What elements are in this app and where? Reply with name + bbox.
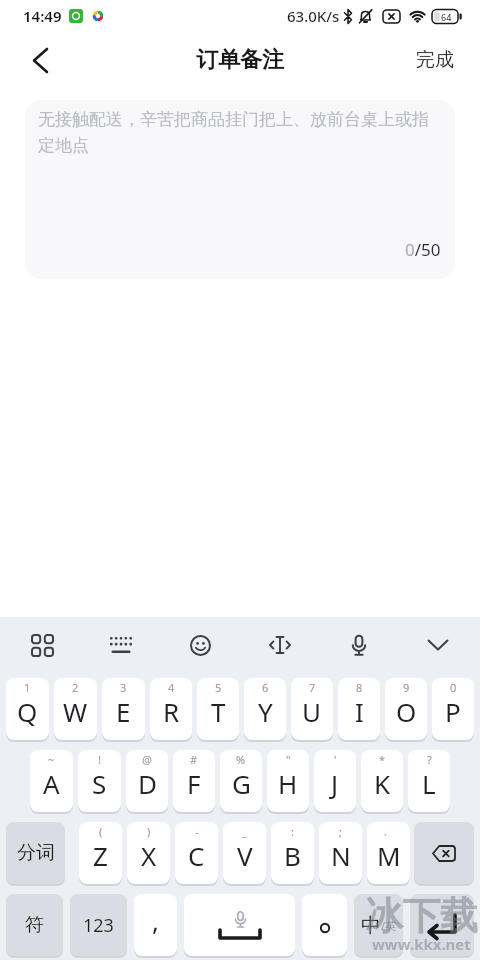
staticText: % — [236, 752, 246, 767]
staticText: " — [286, 752, 291, 767]
staticText: J — [331, 766, 339, 801]
staticText: 完成 — [416, 48, 454, 72]
button[interactable]: # — [173, 750, 215, 812]
staticText: 123 — [83, 913, 114, 938]
staticText: - — [195, 824, 199, 839]
staticText: M — [377, 838, 401, 873]
button[interactable]: - — [175, 822, 218, 884]
staticText: /英 — [381, 918, 397, 933]
button[interactable]: ) — [127, 822, 170, 884]
staticText: 6 — [262, 680, 269, 695]
button[interactable] — [414, 822, 474, 884]
staticText: ! — [98, 752, 101, 767]
staticText: ; — [339, 824, 342, 839]
button[interactable]: ~ — [30, 750, 73, 812]
staticText: Y — [258, 694, 273, 729]
button[interactable]: 符 — [6, 894, 63, 956]
button[interactable] — [302, 894, 347, 956]
button[interactable]: _ — [223, 822, 266, 884]
staticText: P — [445, 694, 461, 729]
staticText: F — [187, 766, 201, 801]
staticText: : — [291, 824, 294, 839]
staticText: 7 — [309, 680, 316, 695]
staticText: 订单备注 — [196, 46, 284, 74]
staticText: @ — [142, 752, 152, 767]
staticText: ) — [147, 824, 151, 839]
button[interactable] — [258, 623, 302, 667]
button[interactable]: 3 — [102, 678, 145, 740]
button[interactable]: 9 — [385, 678, 427, 740]
staticText: _ — [242, 824, 247, 839]
staticText: A — [43, 766, 60, 801]
button[interactable]: 0 — [432, 678, 474, 740]
button[interactable]: 中 — [354, 894, 403, 956]
button[interactable]: : — [271, 822, 314, 884]
button[interactable] — [99, 623, 143, 667]
button[interactable]: , — [134, 894, 177, 956]
staticText: Z — [93, 838, 108, 873]
staticText: N — [331, 838, 351, 873]
staticText: B — [284, 838, 301, 873]
button[interactable]: 完成 — [416, 48, 454, 72]
staticText: E — [116, 694, 131, 729]
staticText: H — [278, 766, 298, 801]
staticText: 3 — [120, 680, 127, 695]
staticText: 1 — [24, 680, 31, 695]
button[interactable]: * — [361, 750, 403, 812]
button[interactable]: ? — [408, 750, 450, 812]
staticText: 分词 — [17, 841, 55, 865]
button[interactable]: 2 — [54, 678, 97, 740]
button[interactable]: ' — [314, 750, 356, 812]
staticText: O — [396, 694, 417, 729]
staticText: Q — [17, 694, 38, 729]
staticText: C — [188, 838, 205, 873]
staticText: X — [141, 838, 157, 873]
staticText: 符 — [25, 913, 44, 937]
staticText: ' — [334, 752, 337, 767]
button[interactable]: @ — [126, 750, 168, 812]
button[interactable]: 6 — [244, 678, 286, 740]
button[interactable]: 无接触配送，辛苦把商品挂门把上、放前台桌上或指定地点 — [25, 100, 455, 279]
button[interactable]: 1 — [6, 678, 49, 740]
staticText: ? — [427, 752, 432, 767]
staticText: 、 — [383, 824, 394, 838]
button[interactable] — [20, 40, 60, 80]
button[interactable] — [416, 623, 460, 667]
button[interactable] — [20, 623, 64, 667]
button[interactable]: ! — [78, 750, 121, 812]
button[interactable]: 、 — [367, 822, 410, 884]
staticText: 中 — [361, 913, 381, 938]
button[interactable]: ( — [79, 822, 122, 884]
staticText: * — [379, 752, 386, 767]
button[interactable]: 5 — [197, 678, 239, 740]
button[interactable]: 7 — [291, 678, 333, 740]
staticText: L — [422, 766, 436, 801]
button[interactable] — [410, 894, 474, 956]
staticText: 64 — [441, 11, 452, 23]
staticText: T — [211, 694, 226, 729]
button[interactable]: % — [220, 750, 262, 812]
staticText: 8 — [356, 680, 363, 695]
button[interactable]: 4 — [150, 678, 192, 740]
staticText: 5 — [215, 680, 222, 695]
button[interactable] — [184, 894, 295, 956]
staticText: ( — [99, 824, 103, 839]
staticText: 2 — [72, 680, 79, 695]
staticText: ~ — [48, 752, 55, 767]
staticText: S — [92, 766, 107, 801]
staticText: 0 — [450, 680, 457, 695]
staticText: 14:49 — [23, 6, 62, 26]
button[interactable] — [337, 623, 381, 667]
button[interactable]: 123 — [70, 894, 127, 956]
button[interactable]: ; — [319, 822, 362, 884]
button[interactable]: 分词 — [6, 822, 65, 884]
button[interactable] — [178, 623, 222, 667]
staticText: K — [374, 766, 391, 801]
staticText: I — [355, 694, 364, 729]
button[interactable]: " — [267, 750, 309, 812]
staticText: , — [152, 903, 159, 938]
staticText: 63.0K/s — [287, 6, 340, 26]
staticText: 冰下载 — [365, 892, 478, 940]
staticText: G — [232, 766, 251, 801]
button[interactable]: 8 — [338, 678, 380, 740]
